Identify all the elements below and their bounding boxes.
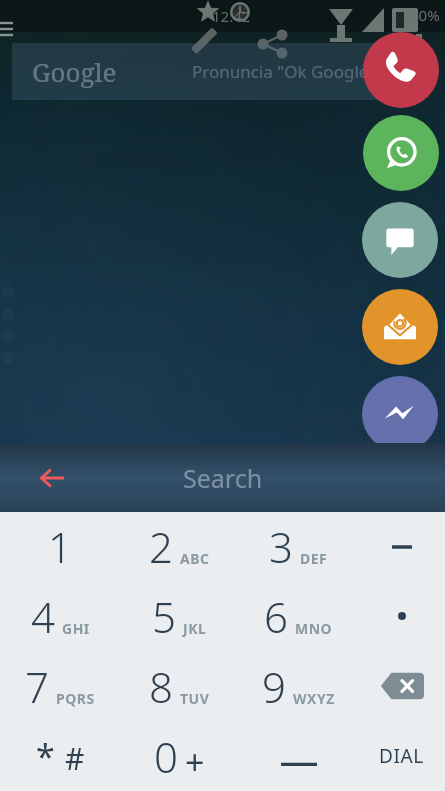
- button[interactable]: Call: [363, 32, 439, 108]
- button[interactable]: [358, 651, 445, 721]
- button[interactable]: 6: [239, 581, 358, 651]
- staticText: 0: [154, 728, 178, 785]
- staticText: #: [65, 738, 85, 779]
- staticText: 7: [25, 658, 49, 715]
- button[interactable]: Google: [12, 43, 382, 100]
- button[interactable]: 0: [120, 721, 239, 791]
- button[interactable]: Email: [362, 289, 438, 365]
- staticText: +: [185, 739, 205, 785]
- staticText: 6: [264, 588, 288, 645]
- button[interactable]: Back: [30, 456, 74, 500]
- button[interactable]: Back: [0, 443, 445, 512]
- button[interactable]: WhatsApp: [363, 115, 439, 191]
- button[interactable]: Messenger: [362, 376, 438, 452]
- staticText: 1: [48, 518, 72, 575]
- staticText: MNO: [295, 619, 333, 638]
- staticText: ABC: [180, 549, 210, 568]
- button[interactable]: Messages: [362, 202, 438, 278]
- staticText: 8: [149, 658, 173, 715]
- staticText: GHI: [62, 619, 90, 638]
- button[interactable]: [358, 512, 445, 581]
- staticText: Search: [183, 461, 263, 495]
- staticText: WXYZ: [293, 689, 335, 708]
- staticText: 2: [149, 518, 173, 575]
- staticText: 12:42: [212, 6, 251, 26]
- staticText: PQRS: [56, 689, 95, 708]
- button[interactable]: 3: [239, 512, 358, 581]
- button[interactable]: [358, 581, 445, 651]
- staticText: 4: [31, 588, 55, 645]
- staticText: JKL: [183, 619, 207, 638]
- staticText: 9: [262, 658, 286, 715]
- button[interactable]: 9: [239, 651, 358, 721]
- staticText: Google: [32, 54, 117, 89]
- staticText: 40%: [410, 5, 440, 25]
- staticText: DIAL: [379, 743, 424, 769]
- staticText: 5: [152, 588, 176, 645]
- button[interactable]: *: [0, 721, 120, 791]
- staticText: TUV: [180, 689, 210, 708]
- button[interactable]: 2: [120, 512, 239, 581]
- button[interactable]: 8: [120, 651, 239, 721]
- button[interactable]: DIAL: [358, 721, 445, 791]
- button[interactable]: [239, 721, 358, 791]
- staticText: DEF: [300, 549, 328, 568]
- button[interactable]: 4: [0, 581, 120, 651]
- button[interactable]: 5: [120, 581, 239, 651]
- staticText: Pronuncia "Ok Google": [192, 60, 376, 83]
- button[interactable]: 1: [0, 512, 120, 581]
- staticText: *: [36, 733, 55, 779]
- button[interactable]: 7: [0, 651, 120, 721]
- staticText: 3: [269, 518, 293, 575]
